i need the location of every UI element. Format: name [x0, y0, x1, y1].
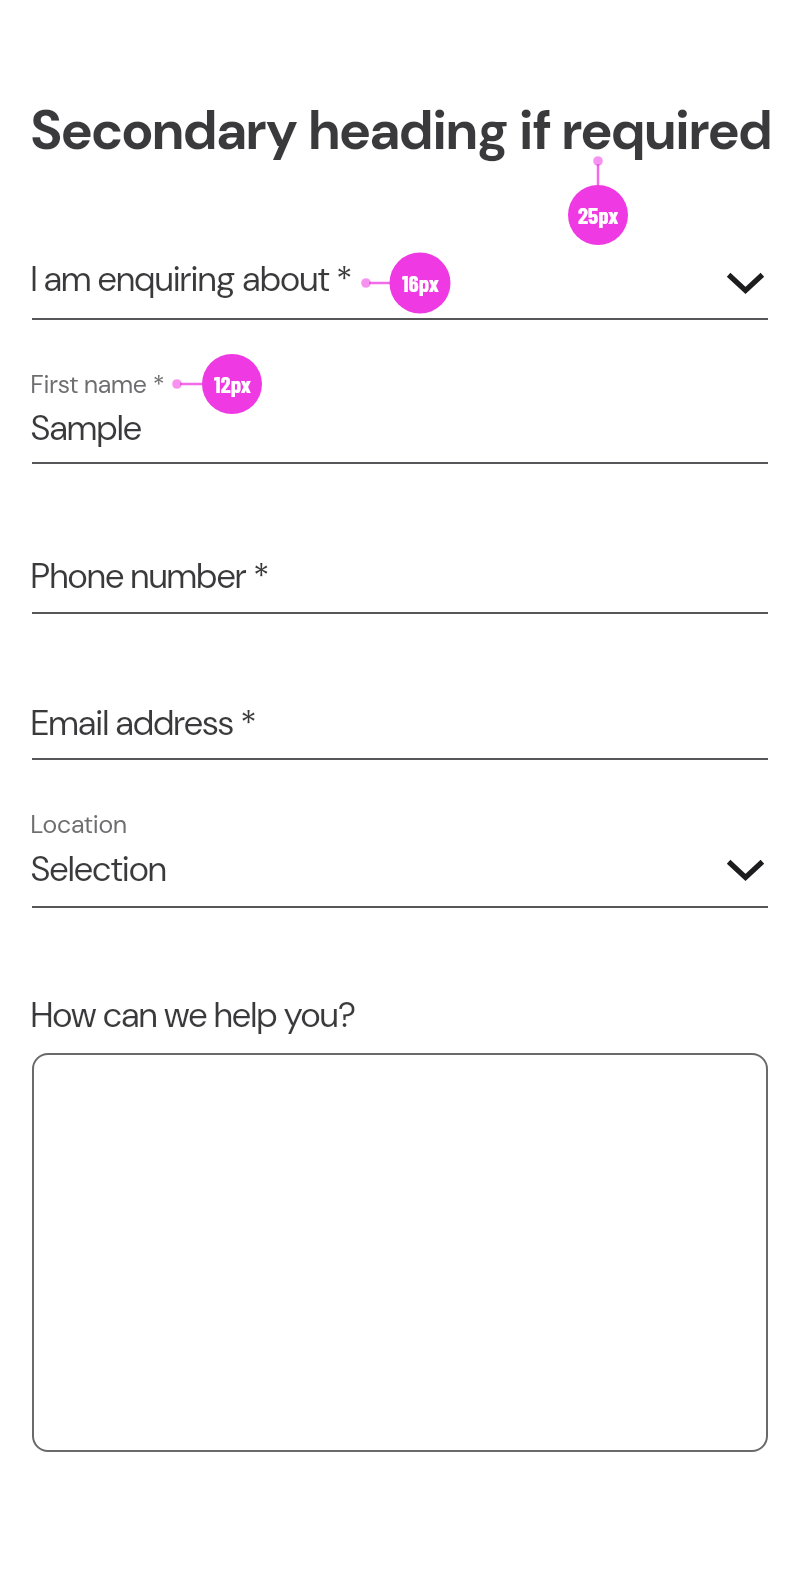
button[interactable]: Selection: [32, 840, 768, 908]
staticText: Selection: [31, 846, 167, 892]
staticText: Email address *: [31, 700, 257, 746]
staticText: First name *: [31, 368, 166, 401]
staticText: 12px: [214, 370, 251, 398]
button[interactable]: I am enquiring about *: [32, 250, 768, 320]
staticText: Phone number *: [31, 553, 270, 599]
staticText: I am enquiring about *: [31, 256, 353, 302]
staticText: Location: [31, 808, 128, 841]
staticText: Secondary heading if required: [31, 95, 773, 165]
staticText: How can we help you?: [31, 992, 357, 1038]
staticText: Sample: [31, 405, 142, 451]
staticText: 25px: [578, 201, 619, 229]
staticText: 16px: [402, 269, 439, 297]
button[interactable]: [32, 1053, 768, 1452]
